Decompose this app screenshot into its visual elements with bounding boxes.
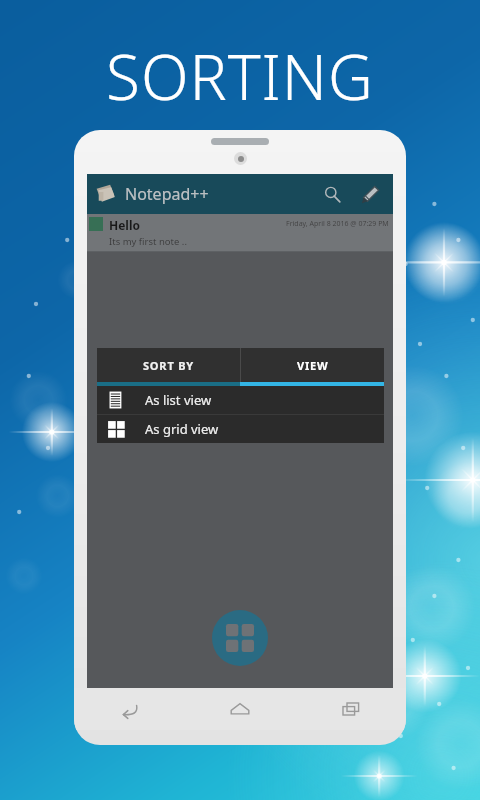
button[interactable]: Home bbox=[184, 688, 295, 730]
button[interactable]: Search bbox=[315, 177, 349, 211]
button[interactable]: Recent apps bbox=[295, 688, 406, 730]
button[interactable]: Grid view bbox=[212, 610, 268, 666]
staticText: SORT BY bbox=[143, 358, 194, 373]
button[interactable]: Hello bbox=[87, 214, 393, 252]
button[interactable]: VIEW bbox=[241, 348, 384, 382]
button[interactable]: As list view bbox=[97, 386, 384, 414]
staticText: As grid view bbox=[145, 420, 219, 438]
button[interactable]: New note bbox=[353, 177, 387, 211]
button[interactable]: As grid view bbox=[97, 415, 384, 443]
button[interactable]: SORT BY bbox=[97, 348, 240, 382]
staticText: Hello bbox=[109, 217, 140, 233]
staticText: Notepad++ bbox=[125, 183, 209, 205]
staticText: As list view bbox=[145, 391, 212, 409]
staticText: Its my first note .. bbox=[109, 235, 187, 248]
button[interactable]: Back bbox=[74, 688, 184, 730]
staticText: SORTING bbox=[106, 34, 374, 118]
staticText: Friday, April 8 2016 @ 07:29 PM bbox=[286, 219, 389, 229]
staticText: VIEW bbox=[297, 358, 329, 373]
